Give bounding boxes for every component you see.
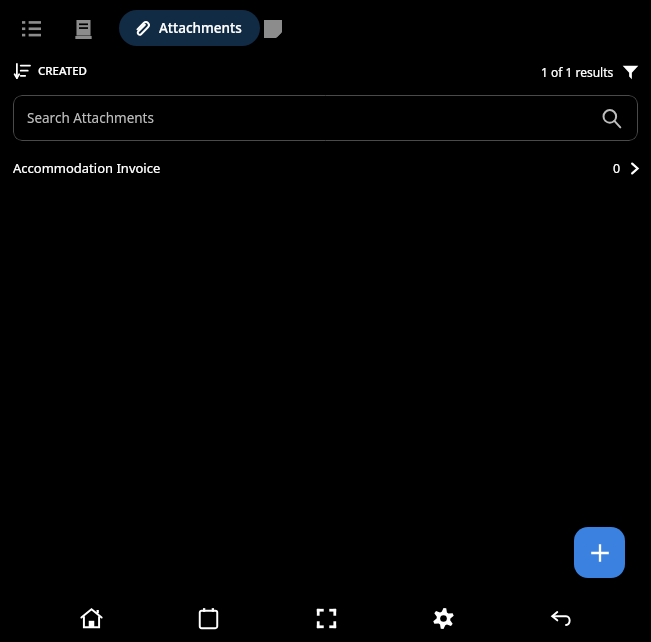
button[interactable]: Settings [417, 595, 469, 642]
staticText: Search Attachments [27, 109, 601, 127]
staticText: 1 of 1 results [541, 64, 614, 80]
button[interactable]: 1 of 1 results [537, 60, 643, 83]
button[interactable]: List view [12, 10, 50, 48]
staticText: Attachments [159, 19, 242, 37]
button[interactable]: Accommodation Invoice [0, 155, 651, 181]
button[interactable]: Add attachment [574, 527, 625, 578]
button[interactable]: Scan [300, 595, 352, 642]
button[interactable]: Notes [254, 10, 292, 48]
button[interactable]: Search Attachments [13, 95, 638, 141]
staticText: Accommodation Invoice [13, 159, 613, 177]
button[interactable]: Calendar [182, 595, 234, 642]
button[interactable]: Home [65, 595, 117, 642]
staticText: 0 [613, 160, 621, 177]
button[interactable]: Documents [64, 10, 102, 48]
button[interactable]: Attachments [119, 10, 260, 46]
button[interactable]: CREATED [8, 60, 93, 82]
button[interactable]: Back [534, 595, 586, 642]
staticText: CREATED [38, 63, 87, 79]
